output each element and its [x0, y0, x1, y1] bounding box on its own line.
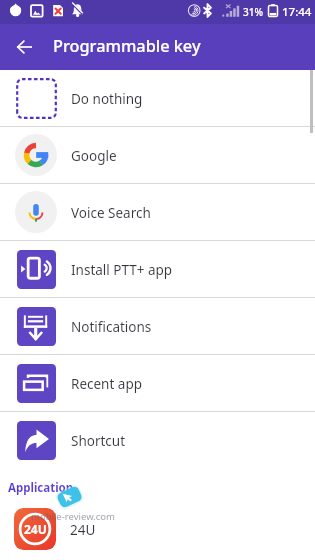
- button[interactable]: Google: [0, 127, 315, 183]
- button[interactable]: Notifications: [0, 298, 315, 354]
- staticText: 17:44: [282, 4, 312, 20]
- button[interactable]: Back: [0, 24, 48, 70]
- staticText: 24U: [70, 521, 96, 539]
- staticText: Google: [71, 147, 117, 165]
- button[interactable]: Install PTT+ app: [0, 241, 315, 297]
- staticText: Shortcut: [71, 432, 126, 450]
- staticText: Programmable key: [53, 35, 201, 57]
- staticText: Install PTT+ app: [71, 261, 173, 279]
- staticText: Application: [8, 480, 74, 496]
- staticText: Voice Search: [71, 204, 151, 222]
- staticText: Recent app: [71, 375, 143, 393]
- button[interactable]: Shortcut: [0, 412, 315, 468]
- button[interactable]: Recent app: [0, 355, 315, 411]
- staticText: mobile-review.com: [31, 510, 115, 523]
- staticText: Do nothing: [71, 90, 143, 108]
- staticText: Notifications: [71, 318, 152, 336]
- button[interactable]: 24U: [0, 501, 315, 555]
- staticText: 31%: [243, 5, 263, 19]
- button[interactable]: Do nothing: [0, 70, 315, 126]
- button[interactable]: Voice Search: [0, 184, 315, 240]
- staticText: 24U: [24, 521, 47, 537]
